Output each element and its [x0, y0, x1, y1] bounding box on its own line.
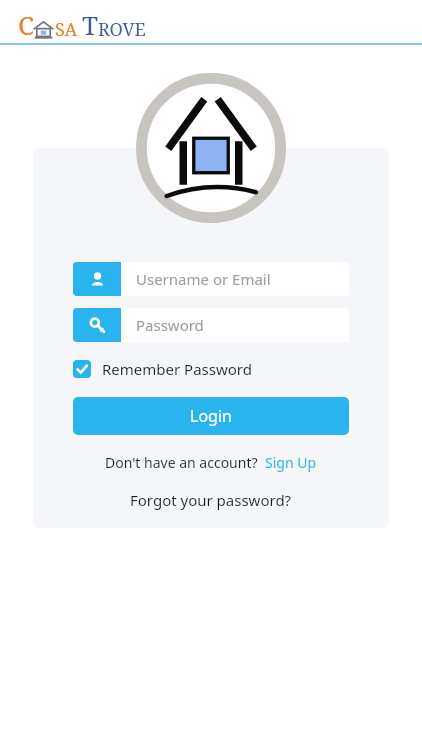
staticText: Password [136, 315, 204, 335]
button[interactable]: User [73, 262, 349, 296]
staticText: Sign Up [265, 453, 317, 472]
staticText: Forgot your password? [130, 490, 292, 510]
button[interactable]: Remember Password [73, 357, 252, 381]
staticText: ROVE [98, 17, 146, 42]
button[interactable]: Login [73, 397, 349, 435]
staticText: Username or Email [136, 269, 271, 289]
button[interactable]: Sign Up [265, 453, 317, 472]
other: User [89, 271, 106, 288]
other: Password [89, 317, 106, 334]
staticText: T [82, 7, 98, 42]
button[interactable]: Password [73, 308, 349, 342]
staticText: Don't have an account? [105, 453, 258, 472]
staticText: SA [55, 17, 78, 42]
staticText: Remember Password [102, 359, 252, 379]
staticText: C [18, 7, 34, 42]
staticText: Login [190, 405, 232, 427]
button[interactable]: Forgot your password? [73, 490, 349, 510]
